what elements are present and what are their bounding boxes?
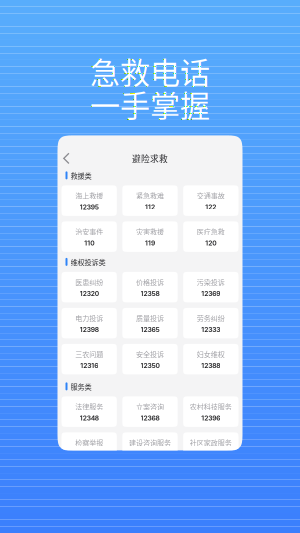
button[interactable]: 灾害救援 [122,221,178,252]
staticText: 三农问题 [75,349,103,359]
staticText: 安全投诉 [136,349,164,359]
staticText: 12388 [201,361,220,370]
staticText: 价格投诉 [136,277,164,287]
staticText: 海上救援 [75,190,103,200]
staticText: 紧急救难 [136,190,164,200]
staticText: 治安事件 [75,226,103,236]
staticText: 灾害救援 [136,226,164,236]
button[interactable]: 三农问题 [61,344,117,374]
staticText: 医疗急救 [197,226,225,236]
button[interactable]: 检察举报 [61,432,117,463]
button[interactable]: 海上救援 [61,185,117,216]
staticText: 服务类 [70,381,91,392]
staticText: 12333 [201,325,220,334]
button[interactable]: 医患纠纷 [61,272,117,302]
staticText: 污染投诉 [197,277,225,287]
button[interactable]: 劳务纠纷 [183,308,238,338]
button[interactable]: 医疗急救 [183,221,238,252]
staticText: 农村科技服务 [190,401,232,411]
staticText: 劳务纠纷 [197,313,225,323]
button[interactable]: 法律服务 [61,396,117,427]
staticText: 立案咨询 [136,401,164,411]
staticText: 避险求救 [132,152,168,165]
staticText: 12395 [80,203,99,211]
button[interactable]: 交通事故 [183,185,238,216]
button[interactable]: 紧急救难 [122,185,178,216]
staticText: 法律服务 [75,401,103,411]
staticText: 12396 [201,414,220,422]
button[interactable]: 治安事件 [61,221,117,252]
button[interactable]: 安全投诉 [122,344,178,374]
button[interactable]: 立案咨询 [122,396,178,427]
staticText: 122 [205,203,216,211]
staticText: 检察举报 [75,437,103,447]
staticText: 质量投诉 [136,313,164,323]
staticText: 社区家政服务 [190,437,232,447]
button[interactable]: 建设咨询服务 [122,432,178,463]
staticText: 一手掌握 [90,82,210,125]
staticText: 妇女维权 [197,349,225,359]
staticText: 12348 [80,414,99,422]
staticText: 电力投诉 [75,313,103,323]
staticText: 12320 [80,289,99,298]
staticText: 12398 [80,325,99,334]
staticText: 96156 [201,450,220,458]
staticText: 12365 [140,325,159,334]
button[interactable]: 农村科技服务 [183,396,238,427]
staticText: 119 [145,239,155,247]
staticText: 110 [84,239,94,247]
staticText: 12309 [80,450,99,458]
staticText: 建设咨询服务 [129,437,171,447]
staticText: 112 [145,203,155,211]
button[interactable]: 妇女维权 [183,344,238,374]
button[interactable]: 质量投诉 [122,308,178,338]
button[interactable]: 电力投诉 [61,308,117,338]
staticText: 医患纠纷 [75,277,103,287]
staticText: 12350 [140,361,159,370]
staticText: 12368 [140,414,159,422]
button[interactable]: 社区家政服务 [183,432,238,463]
staticText: 12316 [80,361,98,370]
staticText: 维权投诉类 [70,257,105,267]
button[interactable]: 污染投诉 [183,272,238,302]
staticText: 12358 [140,289,159,298]
staticText: 交通事故 [197,190,225,200]
staticText: 12319 [141,450,159,458]
button[interactable]: 价格投诉 [122,272,178,302]
staticText: 急救电话 [90,49,210,92]
staticText: 12369 [201,289,220,298]
button[interactable]: Back [57,152,70,164]
staticText: 救援类 [70,170,91,181]
staticText: 120 [205,239,216,247]
